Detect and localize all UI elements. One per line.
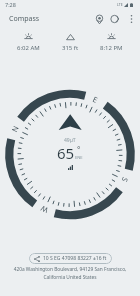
staticText: 49µT (64, 137, 76, 144)
staticText: 6:02 AM (17, 44, 40, 52)
button[interactable]: More options (123, 11, 139, 27)
button[interactable]: 8:12 PM (97, 31, 126, 54)
staticText: LTE (117, 2, 123, 7)
staticText: 10 S EG 47098 83227 ±16 ft (43, 255, 107, 262)
staticText: 420a Washington Boulevard, 94129 San Fra… (3, 266, 137, 280)
staticText: 315 ft (62, 44, 79, 52)
button[interactable]: Send feedback (107, 11, 123, 27)
staticText: 8:12 PM (100, 44, 123, 52)
button[interactable]: 315 ft (59, 31, 82, 54)
button[interactable]: 6:02 AM (14, 31, 43, 54)
button[interactable]: Set location (91, 11, 107, 27)
staticText: 65 (57, 143, 75, 163)
staticText: 7:28 (5, 1, 16, 8)
staticText: ENE (75, 155, 83, 160)
button[interactable]: 10 S EG 47098 83227 ±16 ft (29, 253, 112, 264)
staticText: ° (77, 144, 81, 155)
staticText: Compass (9, 14, 40, 24)
